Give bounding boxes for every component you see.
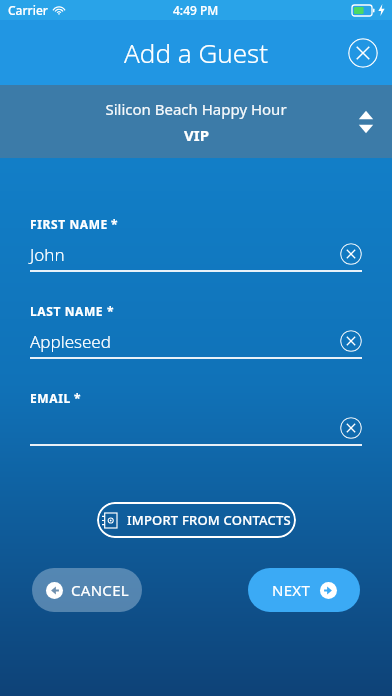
button[interactable]: CANCEL	[32, 568, 142, 612]
button[interactable]: NEXT	[248, 568, 360, 612]
staticText: John	[30, 243, 65, 266]
button[interactable]: Silicon Beach Happy Hour	[0, 85, 392, 158]
button[interactable]: John	[30, 240, 362, 268]
staticText: Appleseed	[30, 330, 111, 353]
staticText: LAST NAME	[30, 303, 104, 319]
staticText: Silicon Beach Happy Hour	[105, 99, 287, 119]
button[interactable]: Close	[348, 38, 378, 68]
staticText: *	[74, 390, 81, 406]
staticText: CANCEL	[71, 580, 129, 600]
staticText: FIRST NAME	[30, 216, 108, 232]
staticText: 4:49 PM	[173, 2, 219, 18]
button[interactable]: IMPORT FROM CONTACTS	[97, 502, 296, 538]
staticText: *	[107, 303, 114, 319]
button[interactable]: Clear EMAIL	[30, 414, 362, 442]
staticText: Add a Guest	[124, 35, 269, 70]
staticText: VIP	[184, 125, 209, 145]
staticText: *	[111, 216, 118, 232]
button[interactable]: Clear EMAIL	[340, 417, 362, 439]
button[interactable]: Appleseed	[30, 327, 362, 355]
staticText: IMPORT FROM CONTACTS	[127, 511, 291, 529]
staticText: EMAIL	[30, 390, 71, 406]
button[interactable]: Clear FIRST NAME	[340, 243, 362, 265]
staticText: Carrier	[8, 2, 48, 18]
other: Change ticket type	[358, 108, 374, 136]
button[interactable]: Clear LAST NAME	[340, 330, 362, 352]
staticText: NEXT	[272, 580, 311, 600]
